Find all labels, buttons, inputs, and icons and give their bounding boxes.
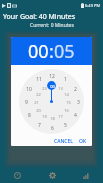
- staticText: 3: [77, 99, 80, 106]
- staticText: 11: [36, 76, 42, 83]
- staticText: 12: [49, 73, 55, 80]
- staticText: 4: [74, 112, 77, 119]
- staticText: 18: [50, 116, 55, 121]
- button[interactable]: OK: [77, 138, 89, 145]
- staticText: 00: [28, 39, 49, 64]
- staticText: 7: [38, 122, 41, 129]
- staticText: 5: [64, 122, 67, 129]
- staticText: 23: [42, 86, 47, 91]
- staticText: 17: [58, 114, 63, 119]
- button[interactable]: CANCEL: [52, 138, 75, 145]
- button[interactable]: Statistics: [69, 172, 103, 179]
- staticText: 8: [28, 112, 31, 119]
- staticText: 6: [51, 125, 54, 132]
- staticText: 21: [34, 100, 39, 105]
- button[interactable]: Workout: [0, 172, 35, 179]
- staticText: 6:49 PM: [85, 3, 101, 8]
- staticText: 05: [54, 39, 75, 64]
- staticText: 1: [64, 76, 67, 83]
- staticText: Your Goal: 40 Minutes: [3, 12, 76, 22]
- staticText: 20: [36, 108, 41, 113]
- staticText: 14: [64, 92, 69, 97]
- staticText: CANCEL: [54, 138, 73, 145]
- staticText: 10: [26, 86, 32, 93]
- staticText: :: [49, 39, 54, 64]
- button[interactable]: 05: [54, 39, 75, 64]
- staticText: 15: [66, 100, 71, 105]
- staticText: 9: [25, 99, 28, 106]
- staticText: 2: [74, 86, 77, 93]
- staticText: OK: [79, 138, 87, 145]
- button[interactable]: Settings: [35, 172, 69, 179]
- staticText: 22: [36, 92, 41, 97]
- staticText: Current: 0 Minutes: [30, 22, 74, 29]
- staticText: 16: [64, 108, 69, 113]
- staticText: 13: [58, 86, 63, 91]
- staticText: 00: [50, 84, 55, 89]
- staticText: 19: [42, 114, 47, 119]
- button[interactable]: 00: [28, 39, 49, 64]
